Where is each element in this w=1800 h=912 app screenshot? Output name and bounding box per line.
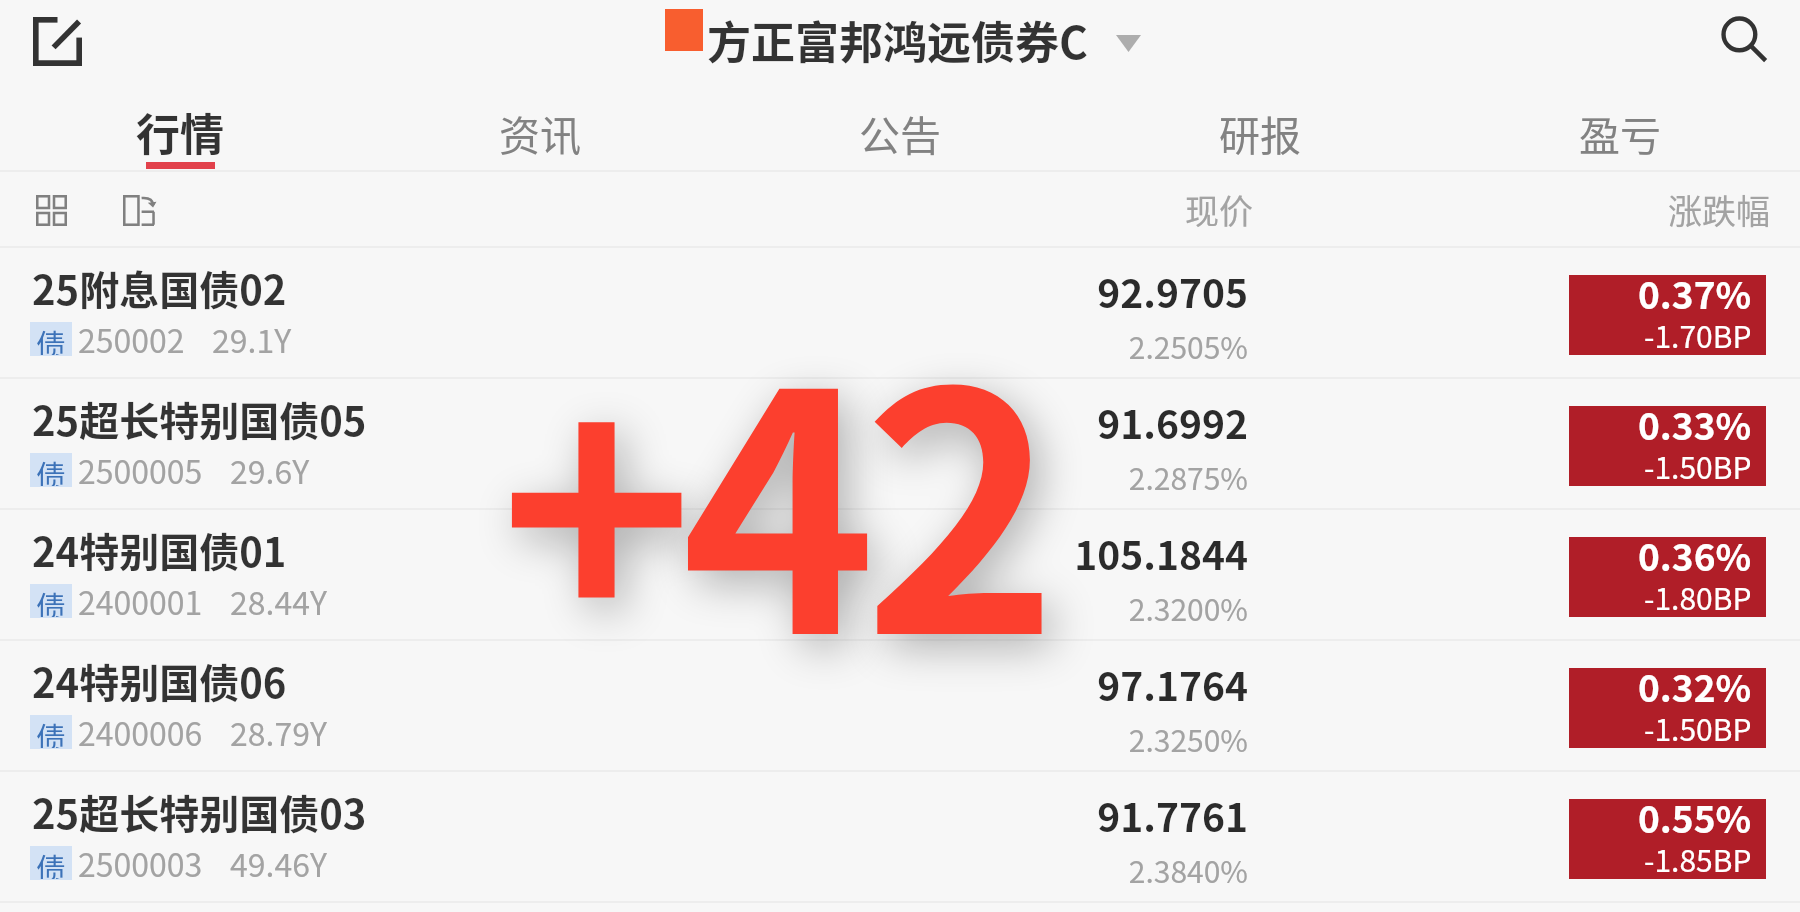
staticText: 0.32% [1638, 659, 1752, 713]
staticText: 方正富邦鸿远债券C [707, 8, 1088, 72]
staticText: 29.1Y [212, 316, 292, 362]
staticText: 25附息国债02 [32, 259, 287, 317]
staticText: 0.33% [1638, 397, 1752, 451]
staticText: 2500005 [78, 447, 203, 493]
staticText: 49.46Y [230, 840, 327, 886]
button[interactable]: 24特别国债06 [0, 641, 1800, 772]
staticText: 25超长特别国债05 [32, 390, 367, 448]
button[interactable]: 24特别国债01 [0, 510, 1800, 641]
staticText: 29.6Y [230, 447, 310, 493]
staticText: -1.50BP [1644, 444, 1752, 487]
staticText: 28.79Y [230, 709, 327, 755]
staticText: 28.44Y [230, 578, 327, 624]
staticText: 24特别国债06 [32, 652, 287, 710]
staticText: 行情 [136, 100, 224, 164]
button[interactable]: Edit watchlist [21, 5, 93, 77]
staticText: 涨跌幅 [1668, 185, 1770, 234]
staticText: -1.80BP [1644, 575, 1752, 618]
staticText: 2.3250% [948, 717, 1248, 760]
staticText: 债 [36, 583, 66, 617]
button[interactable]: 行情 [0, 86, 360, 172]
staticText: 2.2875% [948, 455, 1248, 498]
staticText: 92.9705 [948, 263, 1248, 319]
staticText: 0.37% [1638, 266, 1752, 320]
staticText: 2500003 [78, 840, 203, 886]
staticText: 0.55% [1638, 790, 1752, 844]
button[interactable]: Grid layout [24, 183, 78, 237]
button[interactable]: 方正富邦鸿远债券C [665, 0, 1141, 86]
staticText: -1.70BP [1644, 313, 1752, 356]
button[interactable]: Search [1709, 4, 1779, 74]
button[interactable]: Sort order [112, 183, 166, 237]
staticText: 2.3840% [948, 848, 1248, 891]
staticText: 公告 [859, 103, 941, 162]
staticText: 债 [36, 452, 66, 486]
button[interactable]: 25超长特别国债05 [0, 379, 1800, 510]
staticText: 105.1844 [948, 525, 1248, 581]
staticText: 91.6992 [948, 394, 1248, 450]
staticText: 债 [36, 845, 66, 879]
staticText: +42 [499, 250, 1046, 729]
button[interactable]: 盈亏 [1440, 86, 1800, 172]
staticText: 250002 [78, 316, 185, 362]
staticText: 现价 [1185, 185, 1253, 234]
staticText: 研报 [1219, 103, 1301, 162]
staticText: -1.85BP [1644, 837, 1752, 880]
staticText: 2.3200% [948, 586, 1248, 629]
staticText: 25超长特别国债03 [32, 783, 367, 841]
staticText: 2400001 [78, 578, 203, 624]
staticText: 盈亏 [1579, 103, 1661, 162]
staticText: 97.1764 [948, 656, 1248, 712]
staticText: 资讯 [499, 103, 581, 162]
staticText: 债 [36, 321, 66, 355]
staticText: 2.2505% [948, 324, 1248, 367]
staticText: 2400006 [78, 709, 203, 755]
staticText: 债 [36, 714, 66, 748]
button[interactable]: 研报 [1080, 86, 1440, 172]
button[interactable]: 25附息国债02 [0, 248, 1800, 379]
button[interactable]: 公告 [720, 86, 1080, 172]
staticText: -1.50BP [1644, 706, 1752, 749]
button[interactable]: 资讯 [360, 86, 720, 172]
button[interactable]: 25超长特别国债03 [0, 772, 1800, 903]
staticText: 24特别国债01 [32, 521, 287, 579]
staticText: 91.7761 [948, 787, 1248, 843]
staticText: 0.36% [1638, 528, 1752, 582]
